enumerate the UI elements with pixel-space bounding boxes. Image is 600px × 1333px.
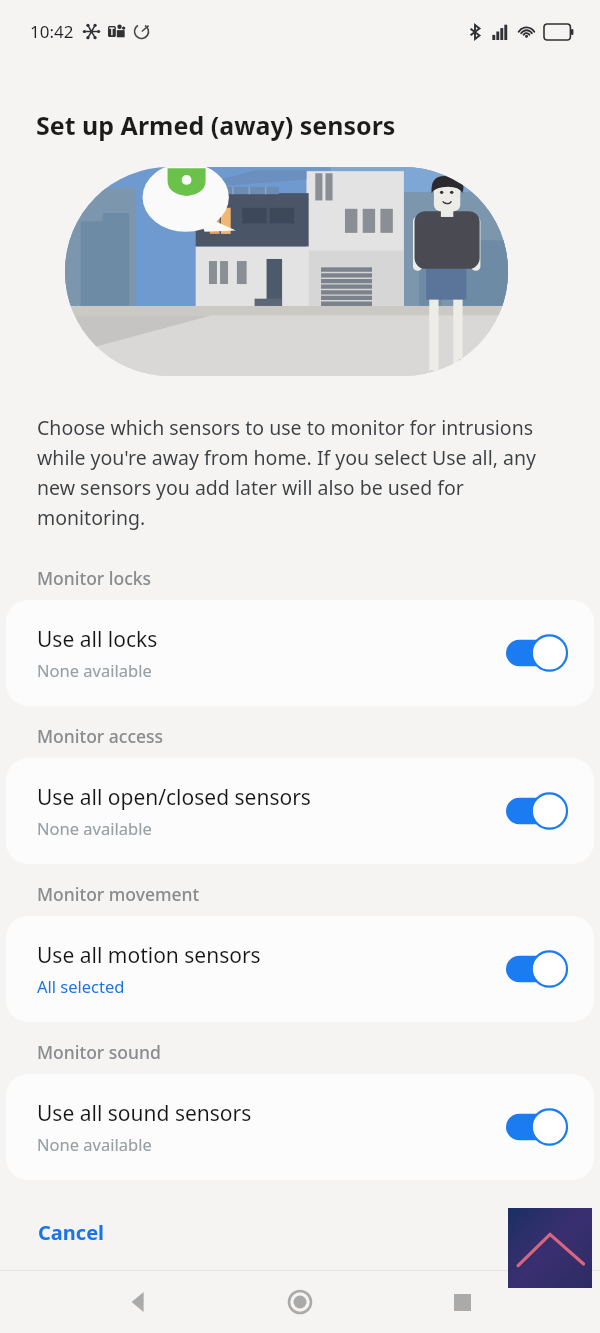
staticText: Monitor sound xyxy=(37,1040,161,1064)
button[interactable]: Use all open/closed sensors xyxy=(6,758,594,864)
staticText: 10:42 xyxy=(30,20,74,43)
button[interactable]: Toggle on xyxy=(506,1107,568,1147)
button[interactable]: Back xyxy=(114,1278,162,1326)
staticText: Monitor locks xyxy=(37,566,152,590)
staticText: Cancel xyxy=(38,1219,105,1246)
staticText: None available xyxy=(37,817,152,839)
button[interactable]: Toggle on xyxy=(506,633,568,673)
staticText: Use all locks xyxy=(37,625,158,654)
staticText: Use all open/closed sensors xyxy=(37,783,311,812)
staticText: None available xyxy=(37,659,152,681)
button[interactable]: Next xyxy=(495,1207,600,1258)
button[interactable]: Toggle on xyxy=(506,949,568,989)
staticText: Choose which sensors to use to monitor f… xyxy=(37,414,570,530)
button[interactable]: Toggle on xyxy=(506,791,568,831)
staticText: Monitor movement xyxy=(37,882,200,906)
button[interactable]: Expand overlay xyxy=(508,1208,592,1288)
staticText: All selected xyxy=(37,975,125,997)
button[interactable]: Recents xyxy=(438,1278,486,1326)
button[interactable]: Use all locks xyxy=(6,600,594,706)
button[interactable]: Home xyxy=(276,1278,324,1326)
button[interactable]: Use all sound sensors xyxy=(6,1074,594,1180)
staticText: None available xyxy=(37,1133,152,1155)
staticText: Use all sound sensors xyxy=(37,1099,252,1128)
staticText: Use all motion sensors xyxy=(37,941,261,970)
staticText: Next xyxy=(513,1219,562,1246)
staticText: Monitor access xyxy=(37,724,164,748)
button[interactable]: Use all motion sensors xyxy=(6,916,594,1022)
staticText: Set up Armed (away) sensors xyxy=(36,108,396,142)
button[interactable]: Cancel xyxy=(0,1207,123,1258)
